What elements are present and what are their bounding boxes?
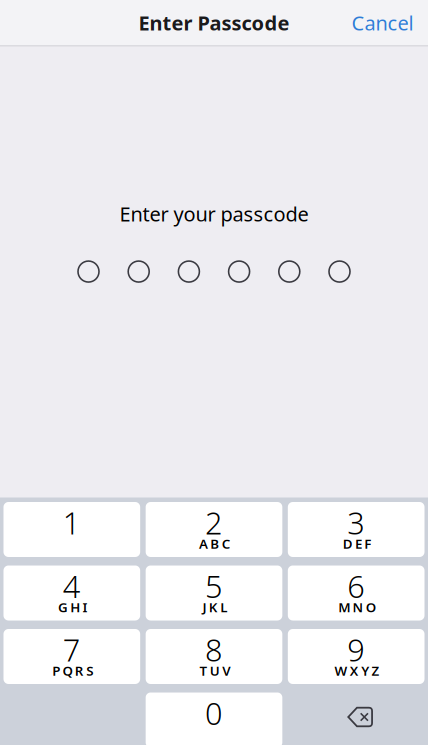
staticText: DEF: [343, 535, 377, 552]
staticText: Enter Passcode: [138, 9, 289, 36]
button[interactable]: 0: [146, 692, 282, 745]
staticText: MNO: [338, 598, 381, 616]
staticText: 3: [347, 502, 365, 543]
staticText: 2: [205, 502, 223, 543]
staticText: 4: [63, 566, 81, 606]
staticText: TUV: [200, 662, 235, 679]
button[interactable]: Delete: [288, 692, 424, 745]
staticText: 1: [63, 502, 81, 543]
staticText: JKL: [203, 598, 232, 616]
staticText: Enter your passcode: [119, 200, 308, 227]
button[interactable]: 7: [3, 629, 140, 684]
button[interactable]: 2: [146, 502, 282, 557]
button[interactable]: 3: [288, 502, 424, 557]
button[interactable]: 6: [288, 565, 424, 620]
staticText: ABC: [199, 535, 236, 552]
button[interactable]: 4: [3, 565, 140, 620]
staticText: WXYZ: [335, 662, 385, 679]
staticText: 8: [205, 629, 223, 670]
button[interactable]: Cancel: [351, 1, 428, 44]
staticText: Cancel: [351, 9, 413, 36]
staticText: 7: [63, 629, 81, 670]
staticText: 5: [205, 566, 223, 606]
button[interactable]: 8: [146, 629, 282, 684]
staticText: 9: [347, 629, 365, 670]
staticText: 0: [205, 693, 223, 733]
button[interactable]: 1: [3, 502, 140, 557]
button[interactable]: 5: [146, 565, 282, 620]
button[interactable]: 9: [288, 629, 424, 684]
staticText: PQRS: [52, 662, 98, 679]
staticText: 6: [347, 566, 365, 606]
staticText: GHI: [58, 598, 93, 616]
